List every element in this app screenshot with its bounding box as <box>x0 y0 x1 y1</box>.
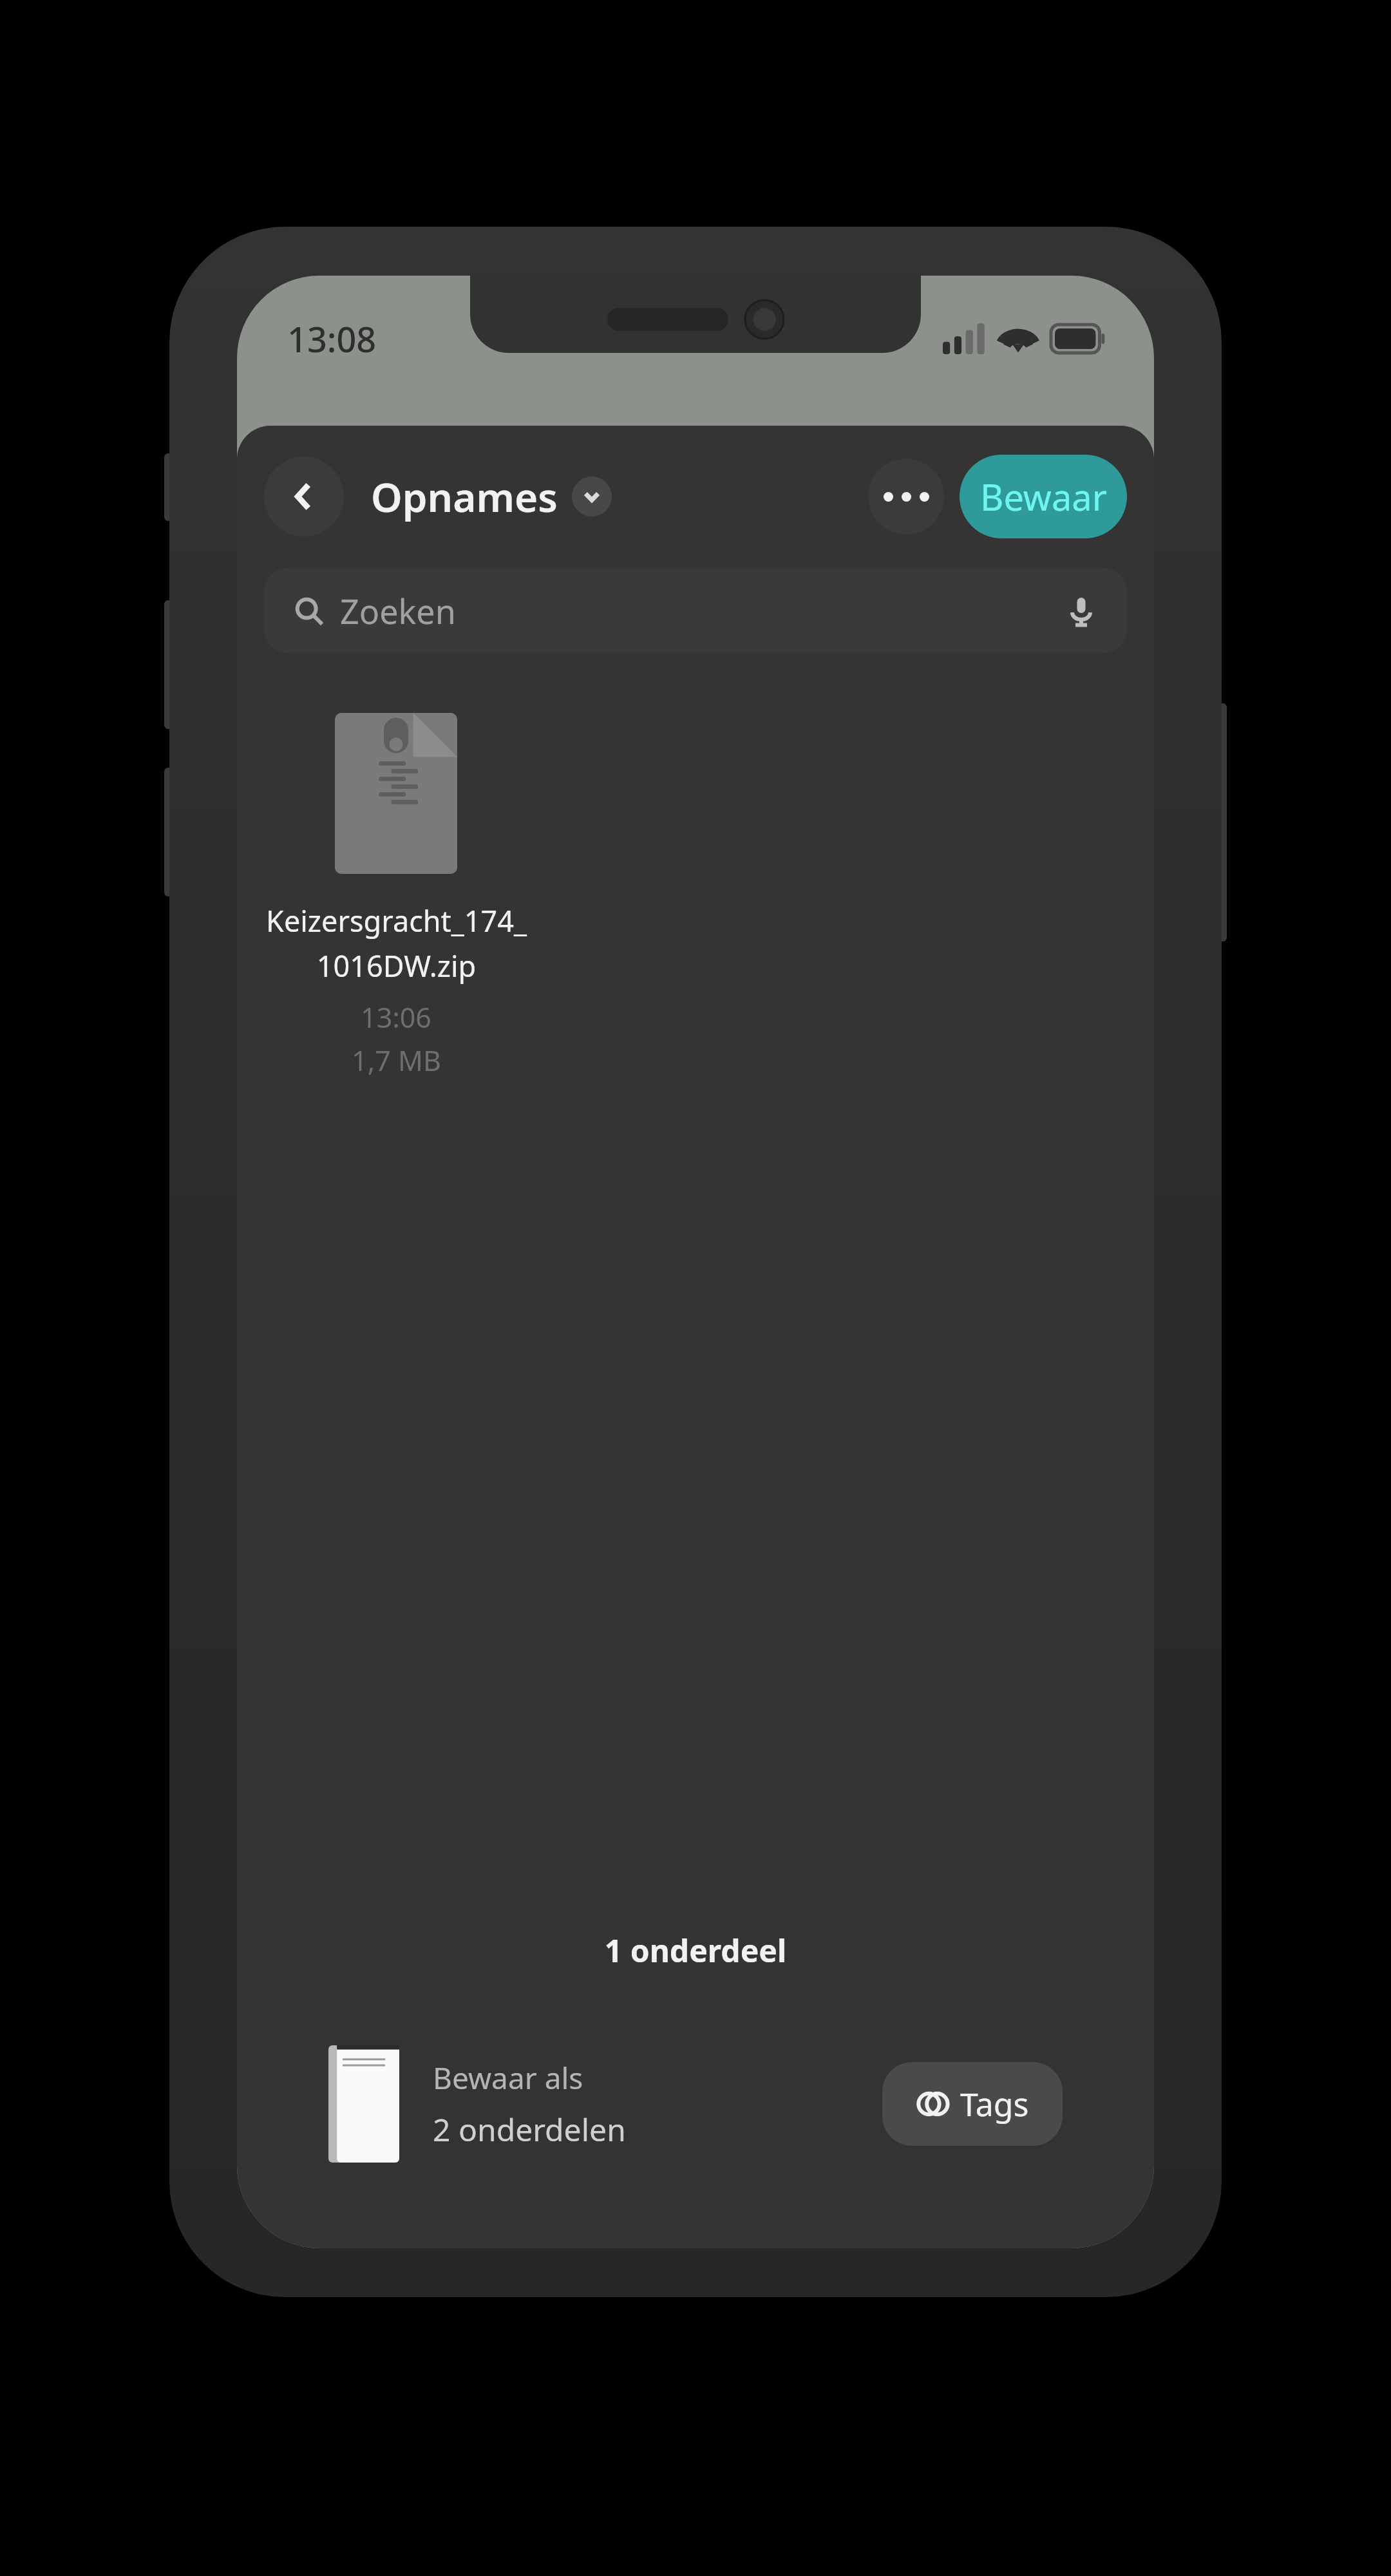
staticText: Keizersgracht_174_ 1016DW.zip <box>266 901 527 985</box>
staticText: 2 onderdelen <box>433 2108 626 2150</box>
button[interactable]: Zoeken <box>264 567 1127 654</box>
staticText: 1,7 MB <box>352 1041 441 1079</box>
button[interactable]: Tags <box>882 2062 1063 2146</box>
staticText: Bewaar als <box>433 2058 583 2098</box>
button[interactable]: Bewaar <box>960 455 1127 538</box>
staticText: 13:06 <box>361 998 431 1036</box>
button[interactable]: Opnames <box>371 469 612 524</box>
button[interactable]: Back <box>264 457 344 536</box>
staticText: Tags <box>960 2082 1029 2126</box>
staticText: Bewaar <box>980 472 1107 521</box>
staticText: Zoeken <box>340 588 456 634</box>
staticText: Opnames <box>371 469 558 524</box>
button[interactable]: Bewaar als <box>301 2018 1090 2190</box>
staticText: 13:08 <box>287 315 377 363</box>
staticText: 1 onderdeel <box>237 1929 1154 1971</box>
button[interactable]: Keizersgracht_174_ 1016DW.zip <box>264 713 528 1079</box>
button[interactable]: More options <box>868 459 944 535</box>
